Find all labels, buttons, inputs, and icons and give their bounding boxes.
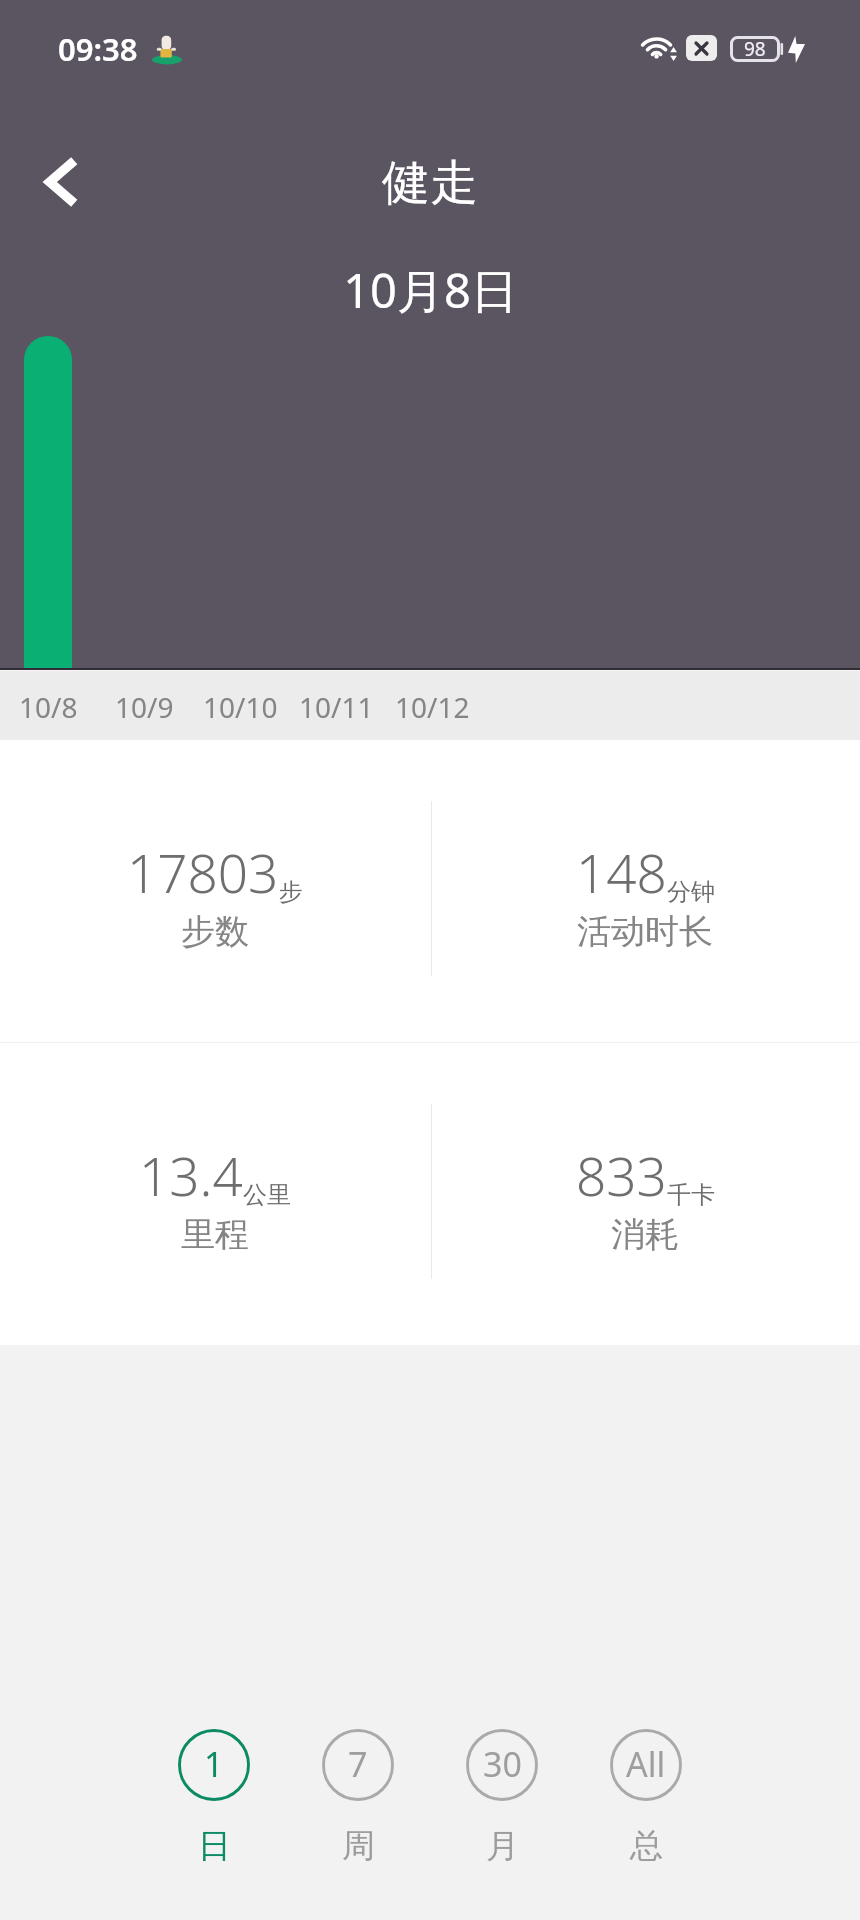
- button[interactable]: 10/11: [288, 671, 384, 740]
- staticText: 17803: [127, 836, 279, 908]
- staticText: 总: [630, 1825, 663, 1867]
- button[interactable]: 7: [286, 1729, 430, 1867]
- staticText: 消耗: [611, 1213, 679, 1256]
- staticText: All: [626, 1741, 666, 1787]
- staticText: 09:38: [58, 28, 138, 70]
- staticText: 步: [279, 877, 303, 907]
- other: Battery 98 percent: [730, 36, 783, 62]
- button[interactable]: 10/9: [96, 671, 192, 740]
- staticText: 10/10: [203, 688, 278, 726]
- staticText: 分钟: [667, 877, 715, 907]
- staticText: 活动时长: [577, 910, 713, 953]
- other: Charging: [788, 36, 805, 63]
- button[interactable]: All: [574, 1729, 718, 1867]
- button[interactable]: 10/10: [192, 671, 288, 740]
- staticText: 里程: [181, 1213, 249, 1256]
- button[interactable]: 10/12: [384, 671, 480, 740]
- button[interactable]: 1: [142, 1729, 286, 1867]
- staticText: 月: [486, 1825, 519, 1867]
- staticText: 30: [483, 1741, 522, 1787]
- staticText: 833: [576, 1139, 667, 1211]
- staticText: 10/8: [19, 688, 78, 726]
- staticText: 公里: [243, 1180, 291, 1210]
- staticText: 10/12: [395, 688, 470, 726]
- button[interactable]: Back: [0, 133, 120, 229]
- staticText: 健走: [382, 153, 478, 213]
- button[interactable]: No SIM: [686, 35, 717, 61]
- staticText: 10/9: [115, 688, 174, 726]
- staticText: 日: [198, 1825, 231, 1867]
- staticText: 步数: [181, 910, 249, 953]
- staticText: 千卡: [667, 1180, 715, 1210]
- staticText: 10月8日: [343, 258, 518, 322]
- staticText: 7: [348, 1741, 368, 1787]
- staticText: 148: [576, 836, 667, 908]
- staticText: 98: [744, 36, 766, 62]
- staticText: 10/11: [299, 688, 374, 726]
- button[interactable]: 30: [430, 1729, 574, 1867]
- staticText: 1: [204, 1741, 224, 1787]
- staticText: 周: [342, 1825, 375, 1867]
- button[interactable]: 10/8: [0, 671, 96, 740]
- other: Wi-Fi: [641, 35, 678, 61]
- staticText: 13.4: [139, 1139, 243, 1211]
